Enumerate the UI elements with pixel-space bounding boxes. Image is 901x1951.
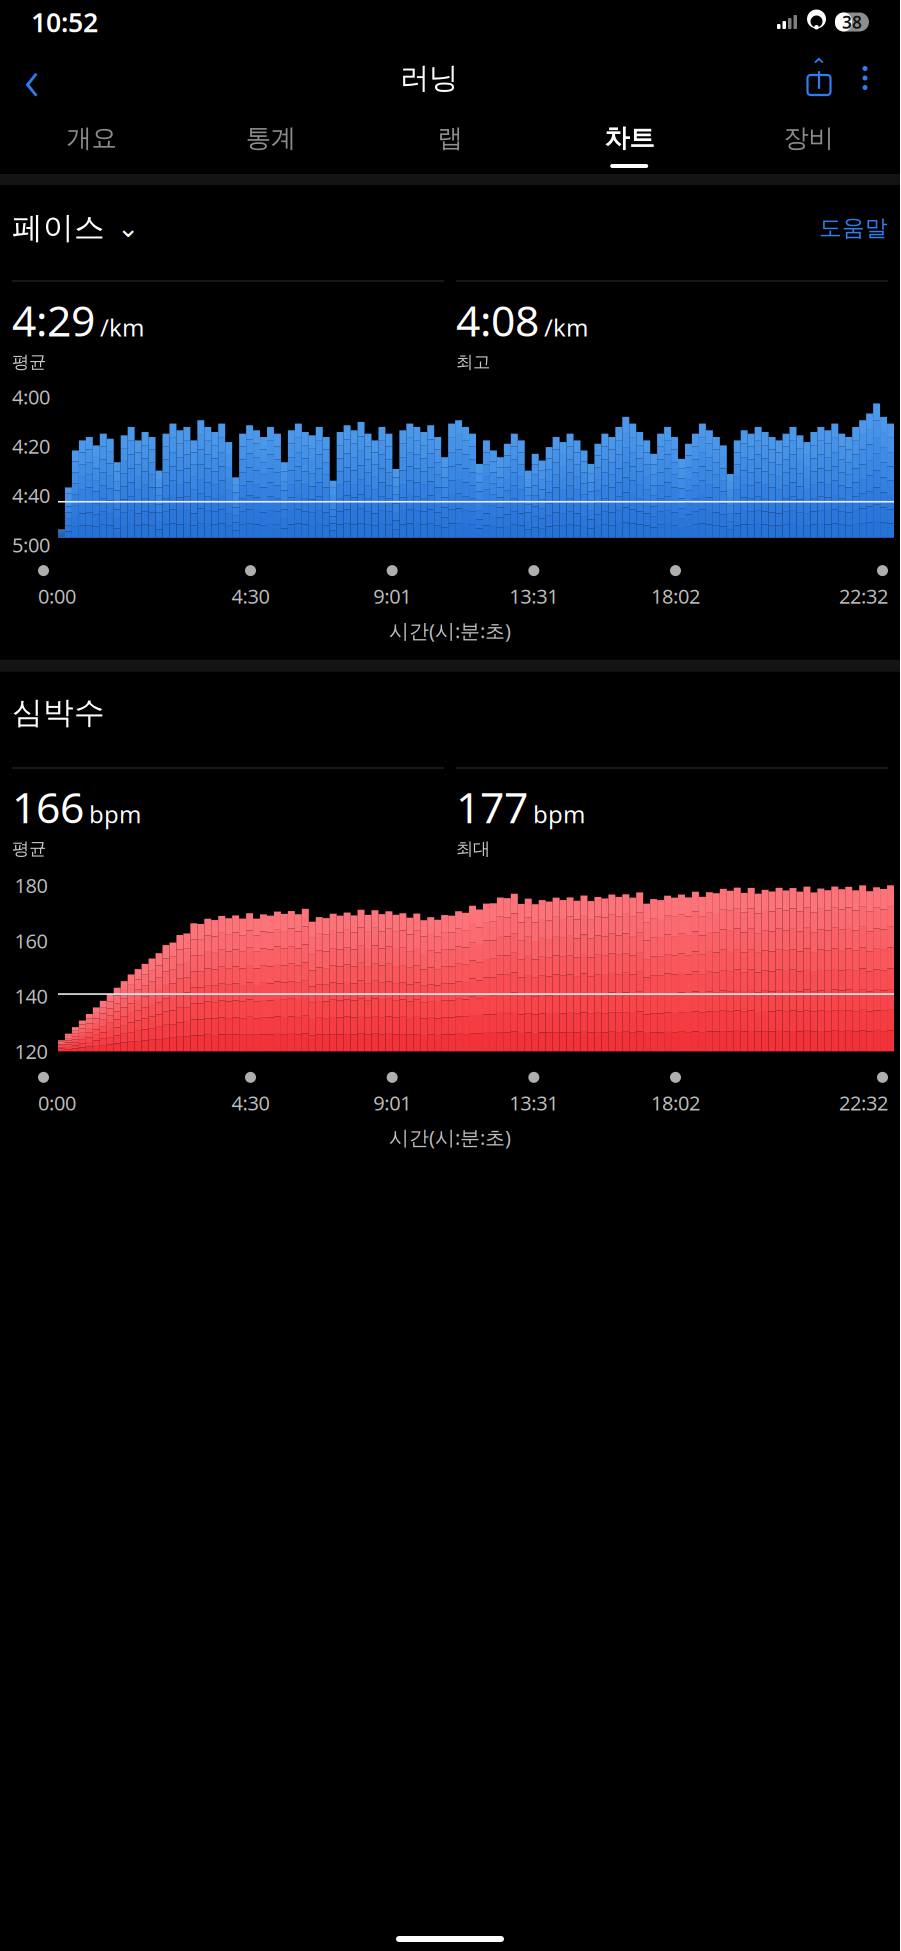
button[interactable]: 통계 [181,112,360,174]
staticText: 22:32 [839,583,888,609]
staticText: 9:01 [373,1089,411,1116]
button[interactable]: 장비 [719,112,898,174]
staticText: 13:31 [509,583,558,609]
button[interactable]: 랩 [360,112,540,174]
staticText: 시간(시:분:초) [389,617,511,644]
staticText: 4:30 [231,583,269,609]
button[interactable]: 도움말 [819,208,888,248]
staticText: 177 [456,778,528,835]
staticText: ⌃ [810,54,828,78]
staticText: 4:00 [12,383,50,410]
staticText: 22:32 [839,1089,888,1116]
staticText: 통계 [246,122,296,153]
button[interactable]: Share [796,50,842,106]
staticText: 평균 [12,838,46,859]
staticText: 도움말 [819,214,888,242]
staticText: 개요 [67,122,117,153]
staticText: bpm [533,798,585,830]
staticText: 10:52 [31,4,98,40]
button[interactable]: More options [842,50,888,106]
button[interactable]: 페이스 [12,203,139,253]
button[interactable]: Back [2,48,62,108]
staticText: 4:30 [231,1089,269,1116]
staticText: ⌄ [117,213,139,243]
staticText: 시간(시:분:초) [389,1124,511,1150]
staticText: 0:00 [38,583,76,609]
staticText: 13:31 [509,1089,558,1116]
staticText: 페이스 [12,209,105,247]
staticText: /km [544,311,588,343]
staticText: 9:01 [373,583,411,609]
staticText: 최대 [456,838,490,859]
staticText: 4:40 [12,482,50,509]
staticText: 120 [14,1038,47,1065]
staticText: 4:29 [12,292,95,348]
staticText: 140 [14,983,47,1009]
staticText: /km [100,311,144,343]
staticText: 4:08 [456,292,539,348]
button[interactable]: 차트 [540,112,719,174]
staticText: bpm [89,798,141,830]
staticText: 4:20 [12,433,50,459]
staticText: 최고 [456,351,490,373]
staticText: 18:02 [651,583,700,609]
staticText: 0:00 [38,1089,76,1116]
staticText: 평균 [12,351,46,373]
staticText: 180 [14,872,47,899]
staticText: 심박수 [12,694,105,731]
staticText: 러닝 [400,60,458,96]
staticText: 랩 [437,122,462,153]
staticText: 장비 [783,122,833,153]
staticText: ‹ [24,39,40,117]
staticText: 166 [12,778,84,835]
staticText: 5:00 [12,531,50,558]
staticText: 18:02 [651,1089,700,1116]
button[interactable]: 개요 [2,112,181,174]
staticText: 38 [842,10,862,33]
staticText: 차트 [604,122,654,153]
staticText: 160 [14,927,47,954]
